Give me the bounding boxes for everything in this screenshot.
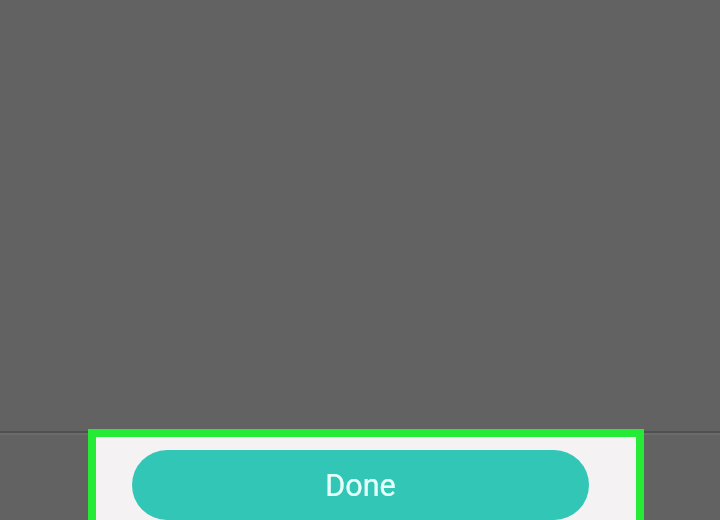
- other: Bottom sheet: [88, 429, 644, 520]
- button[interactable]: Done: [132, 450, 589, 520]
- staticText: Done: [325, 468, 396, 504]
